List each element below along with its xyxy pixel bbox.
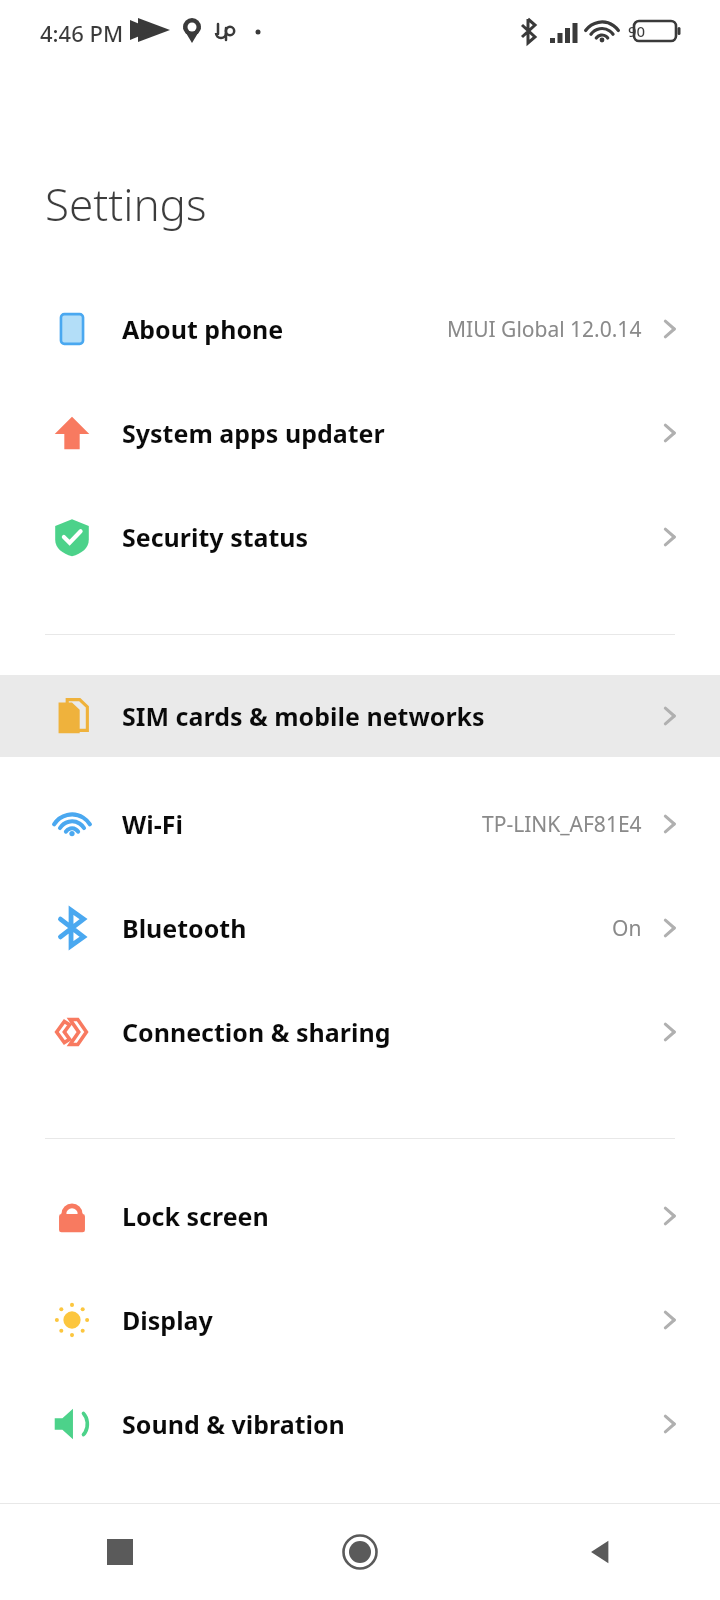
button[interactable]: Display (0, 1279, 720, 1361)
button[interactable]: Connection & sharing (0, 991, 720, 1073)
staticText: Sound & vibration (122, 1407, 345, 1441)
button[interactable]: Recents (0, 1504, 240, 1600)
staticText: 4:46 PM (40, 18, 124, 48)
staticText: 90 (628, 21, 646, 41)
button[interactable]: Sound & vibration (0, 1383, 720, 1465)
staticText: SIM cards & mobile networks (122, 699, 485, 733)
staticText: On (612, 914, 642, 943)
staticText: Wi-Fi (122, 807, 183, 841)
staticText: Security status (122, 520, 309, 554)
staticText: About phone (122, 312, 284, 346)
button[interactable]: Security status (0, 496, 720, 578)
button[interactable]: System apps updater (0, 392, 720, 474)
button[interactable]: Back (480, 1504, 720, 1600)
button[interactable]: About phone (0, 288, 720, 370)
staticText: System apps updater (122, 416, 385, 450)
staticText: Settings (45, 174, 207, 234)
button[interactable]: Home (240, 1504, 480, 1600)
staticText: Connection & sharing (122, 1015, 391, 1049)
staticText: Bluetooth (122, 911, 247, 945)
button[interactable]: SIM cards & mobile networks (0, 675, 720, 757)
button[interactable]: Bluetooth (0, 887, 720, 969)
staticText: TP-LINK_AF81E4 (482, 810, 642, 839)
staticText: MIUI Global 12.0.14 (447, 315, 642, 344)
button[interactable]: Wi-Fi (0, 783, 720, 865)
button[interactable]: Lock screen (0, 1175, 720, 1257)
staticText: Display (122, 1303, 213, 1337)
staticText: Lock screen (122, 1199, 269, 1233)
